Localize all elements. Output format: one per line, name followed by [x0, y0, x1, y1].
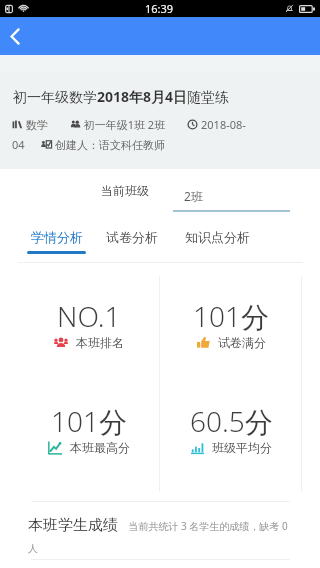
button[interactable]: 101分: [18, 402, 160, 455]
staticText: 60.5分: [190, 402, 273, 440]
staticText: 初一年级数学2018年8月4日随堂练: [13, 87, 230, 106]
staticText: 试卷满分: [218, 335, 266, 350]
staticText: 知识点分析: [185, 229, 250, 245]
staticText: 班级平均分: [212, 440, 272, 455]
button[interactable]: NO.1: [18, 297, 160, 350]
button[interactable]: 101分: [160, 297, 302, 350]
staticText: 101分: [51, 402, 127, 440]
staticText: 本班学生成绩 当前共统计 3 名学生的成绩，缺考 0 人: [28, 516, 298, 555]
staticText: 当前班级: [101, 183, 149, 198]
staticText: 本班最高分: [70, 440, 130, 455]
button[interactable]: 2班: [173, 188, 290, 212]
staticText: 101分: [193, 297, 269, 335]
button[interactable]: Back: [0, 17, 30, 55]
button[interactable]: 试卷分析: [104, 224, 160, 262]
button[interactable]: 60.5分: [160, 402, 302, 455]
staticText: 本班排名: [76, 335, 124, 350]
staticText: 试卷分析: [106, 229, 158, 245]
button[interactable]: 学情分析: [27, 224, 86, 262]
staticText: 学情分析: [31, 229, 83, 245]
button[interactable]: 知识点分析: [181, 224, 253, 262]
staticText: 16:39: [145, 1, 174, 16]
staticText: 2班: [184, 188, 203, 204]
staticText: NO.1: [57, 297, 121, 335]
staticText: B 数学 P 初一年级1班 2班 C 2018-08- 04 R 创建人：语文科…: [12, 117, 246, 152]
